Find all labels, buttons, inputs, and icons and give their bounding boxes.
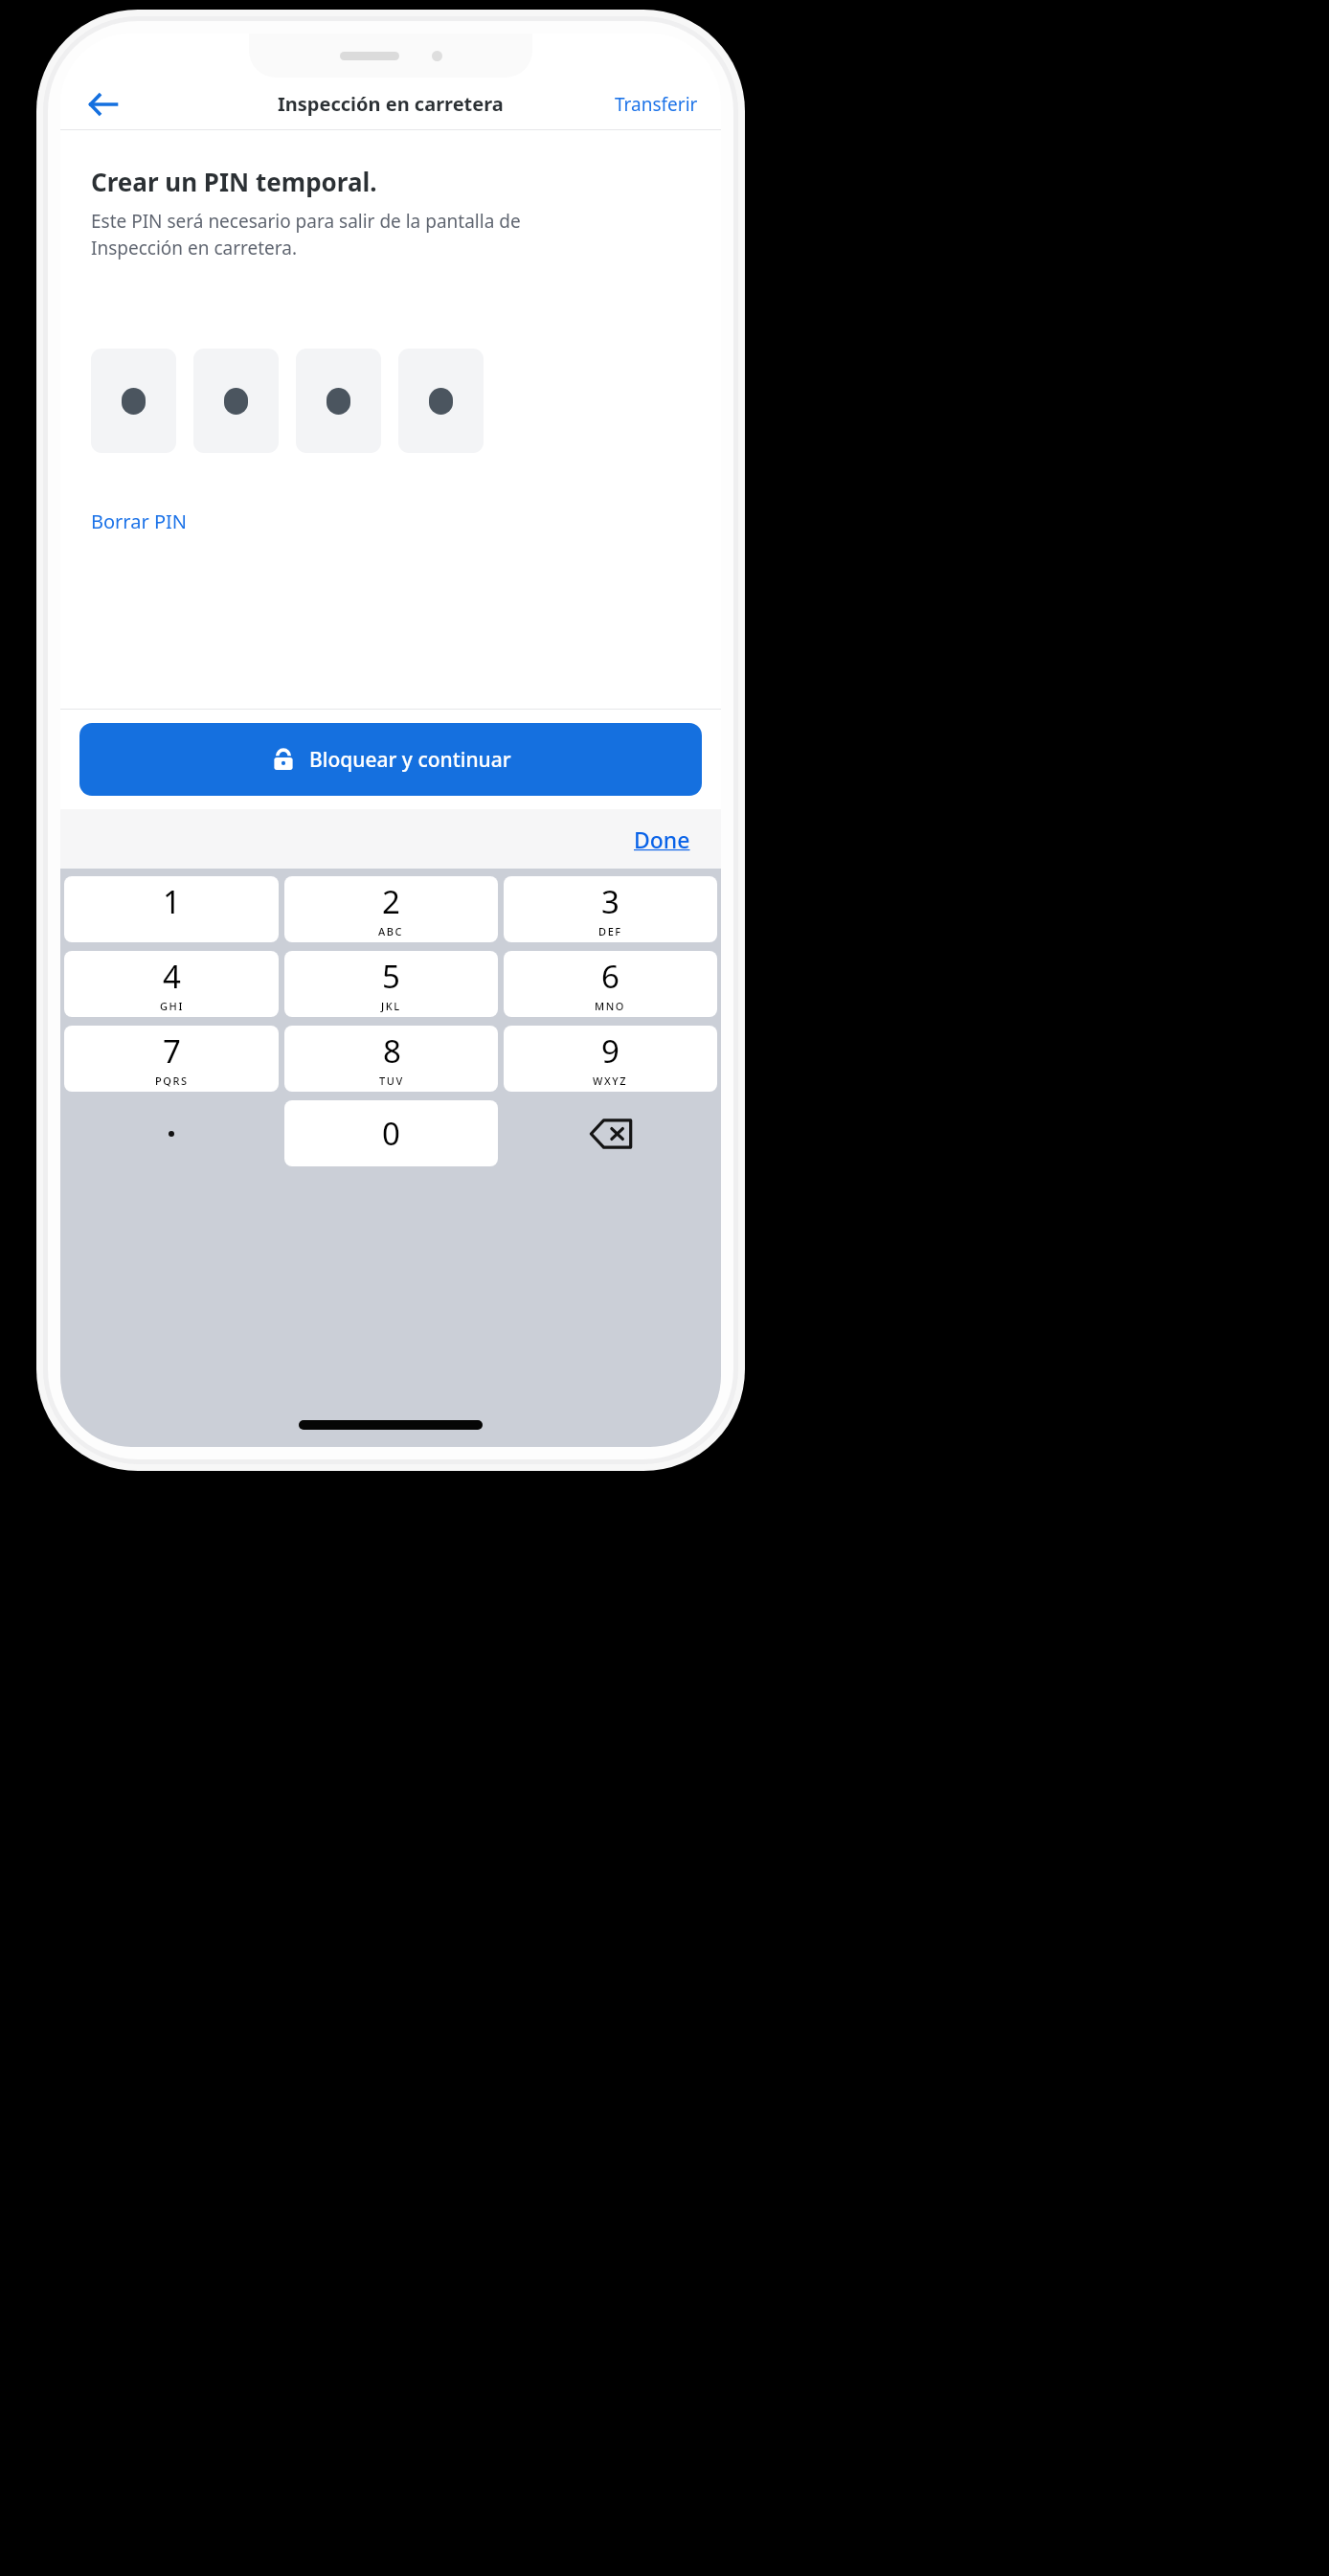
button[interactable]: 8	[284, 1026, 498, 1092]
staticText: MNO	[595, 999, 626, 1013]
button[interactable]	[91, 349, 176, 453]
staticText: JKL	[381, 999, 401, 1013]
staticText: TUV	[379, 1073, 404, 1088]
button[interactable]: 0	[284, 1100, 498, 1166]
button[interactable]: 9	[504, 1026, 717, 1092]
staticText: ABC	[378, 924, 404, 938]
button[interactable]: 1	[64, 876, 279, 942]
staticText: Bloquear y continuar	[309, 746, 511, 774]
staticText: Done	[634, 825, 690, 854]
staticText: 5	[382, 955, 400, 998]
button[interactable]: Bloquear y continuar	[79, 723, 702, 796]
staticText: 6	[601, 955, 619, 998]
button[interactable]: 2	[284, 876, 498, 942]
staticText: Borrar PIN	[91, 508, 187, 534]
staticText: 8	[383, 1029, 401, 1073]
button[interactable]: Done	[630, 819, 694, 860]
button[interactable]: 5	[284, 951, 498, 1017]
button[interactable]: Back	[81, 82, 125, 126]
button[interactable]: 3	[504, 876, 717, 942]
staticText: 2	[382, 880, 400, 923]
button[interactable]	[296, 349, 381, 453]
staticText: GHI	[160, 999, 184, 1013]
staticText: WXYZ	[593, 1073, 628, 1088]
button[interactable]: Backspace	[504, 1100, 717, 1166]
staticText: Inspección en carretera	[278, 91, 504, 117]
staticText: Transferir	[615, 92, 698, 117]
button[interactable]: 4	[64, 951, 279, 1017]
button[interactable]: Borrar PIN	[85, 501, 192, 542]
staticText: 0	[382, 1112, 400, 1155]
button[interactable]: Transferir	[609, 84, 704, 124]
staticText: 3	[601, 880, 619, 923]
staticText: 7	[163, 1029, 181, 1073]
button[interactable]: Period	[64, 1100, 279, 1166]
staticText: PQRS	[155, 1073, 189, 1088]
button[interactable]: 6	[504, 951, 717, 1017]
button[interactable]: 7	[64, 1026, 279, 1092]
staticText: DEF	[598, 924, 622, 938]
staticText: 1	[163, 880, 181, 923]
staticText: Este PIN será necesario para salir de la…	[91, 209, 521, 260]
staticText: 4	[163, 955, 181, 998]
button[interactable]	[193, 349, 279, 453]
staticText: Crear un PIN temporal.	[91, 165, 377, 198]
staticText: 9	[601, 1029, 619, 1073]
button[interactable]	[398, 349, 484, 453]
